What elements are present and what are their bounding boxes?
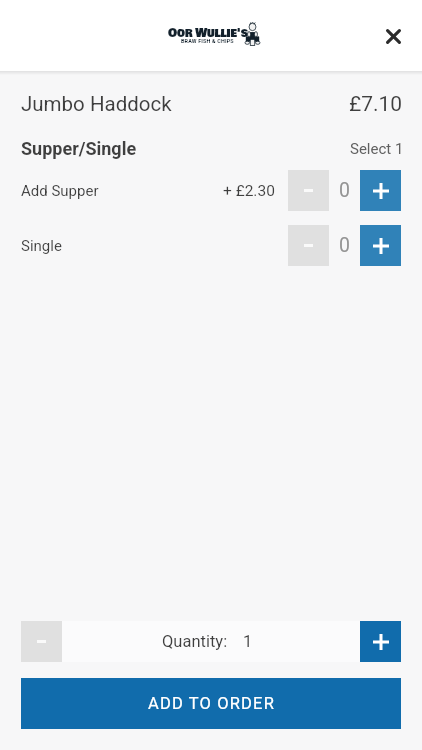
staticText: 0 (339, 179, 350, 202)
staticText: Jumbo Haddock (21, 92, 172, 116)
button[interactable]: Remove Add Supper (288, 170, 329, 211)
button[interactable]: ADD TO ORDER (21, 678, 401, 729)
staticText: ADD TO ORDER (148, 694, 275, 713)
button[interactable]: Add Add Supper (360, 170, 401, 211)
staticText: Oor Wullie's (168, 24, 248, 42)
button[interactable]: Increase quantity (360, 621, 401, 662)
staticText: BRAW FISH & CHIPS (181, 38, 234, 44)
staticText: Select 1 (350, 140, 404, 158)
button[interactable]: Close (369, 12, 417, 60)
button[interactable]: Remove Single (288, 225, 329, 266)
staticText: Supper/Single (21, 138, 137, 159)
button[interactable]: Decrease quantity (21, 621, 62, 662)
staticText: 1 (243, 632, 253, 651)
staticText: £7.10 (349, 92, 403, 117)
button[interactable]: Add Single (360, 225, 401, 266)
staticText: + £2.30 (223, 182, 275, 200)
staticText: Single (21, 237, 62, 255)
staticText: Add Supper (21, 182, 99, 200)
staticText: Quantity: (162, 632, 228, 651)
staticText: 0 (339, 234, 350, 257)
